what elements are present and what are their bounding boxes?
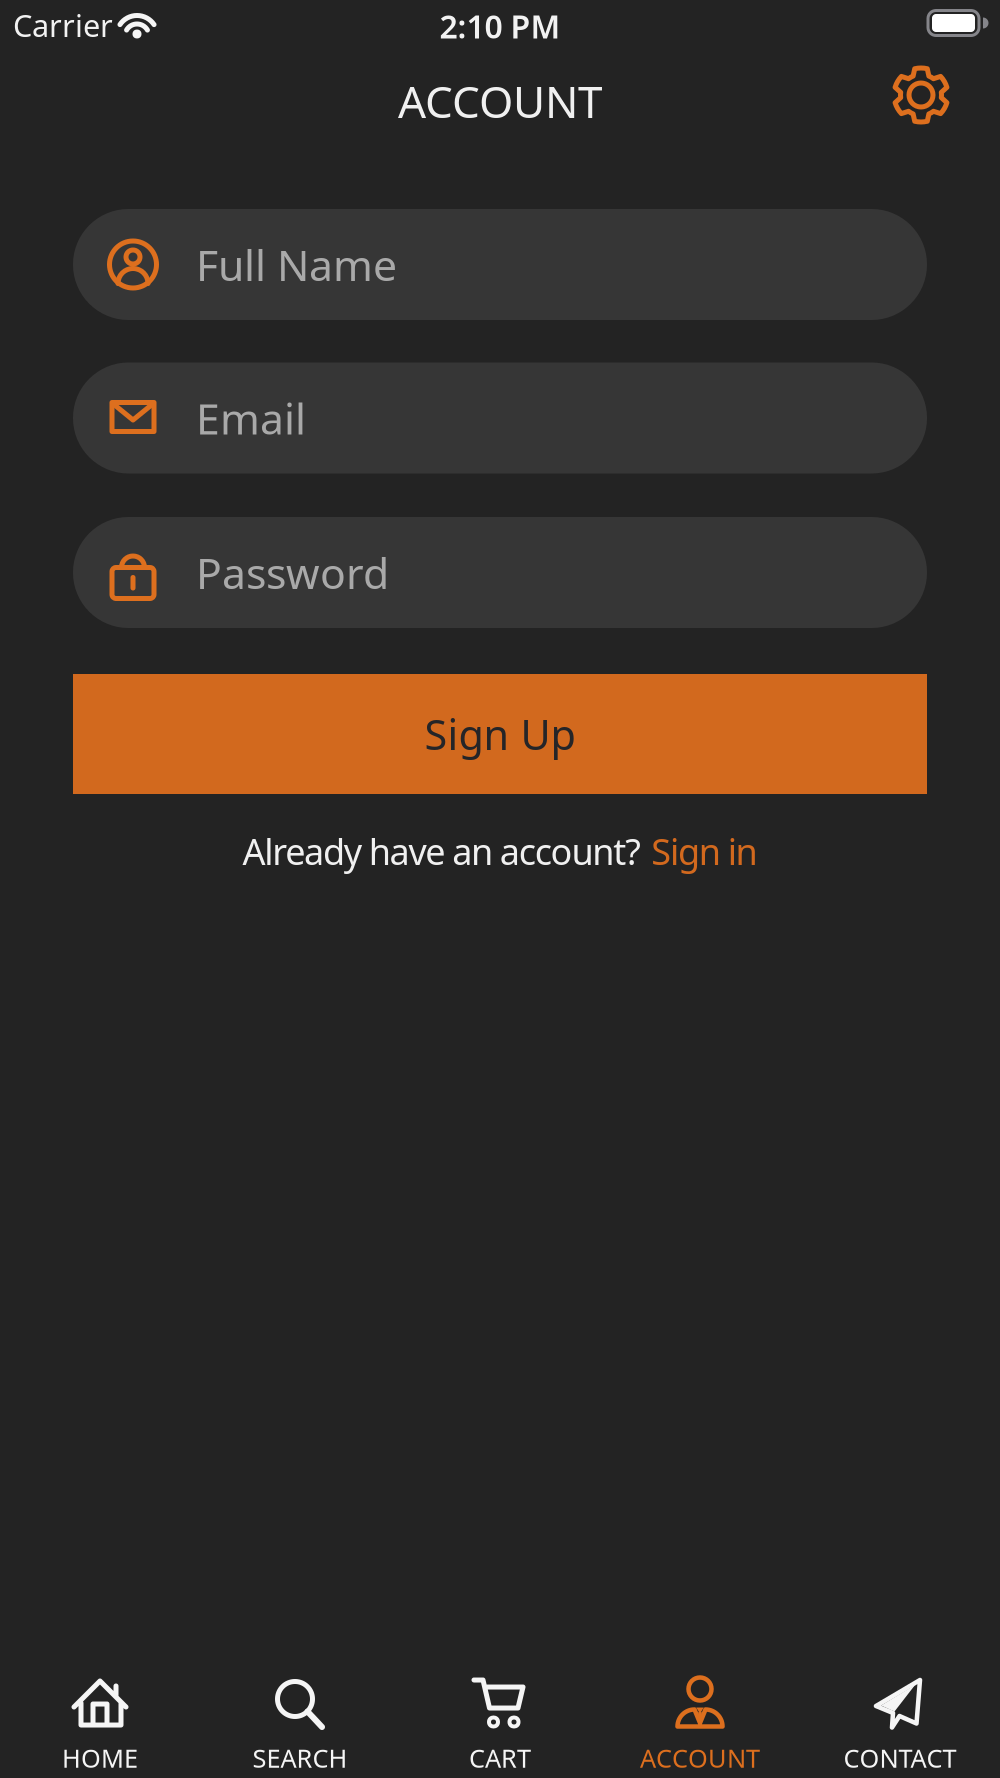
- staticText: Already have an account?: [242, 827, 641, 875]
- button[interactable]: Password: [73, 517, 927, 628]
- staticText: HOME: [62, 1741, 138, 1775]
- button[interactable]: Sign Up: [73, 674, 927, 794]
- staticText: Sign Up: [424, 707, 575, 761]
- staticText: Email: [196, 390, 306, 446]
- staticText: ACCOUNT: [398, 72, 602, 130]
- staticText: Sign in: [651, 827, 758, 875]
- button[interactable]: ACCOUNT: [600, 1651, 800, 1773]
- button[interactable]: HOME: [0, 1651, 200, 1773]
- staticText: CART: [469, 1741, 531, 1775]
- staticText: CONTACT: [843, 1741, 956, 1775]
- staticText: ACCOUNT: [640, 1741, 760, 1775]
- staticText: Password: [196, 544, 389, 601]
- button[interactable]: Settings: [891, 65, 951, 125]
- staticText: Carrier: [13, 5, 113, 45]
- button[interactable]: Full Name: [73, 209, 927, 320]
- button[interactable]: CONTACT: [800, 1651, 1000, 1773]
- button[interactable]: SEARCH: [200, 1651, 400, 1773]
- staticText: SEARCH: [252, 1741, 347, 1775]
- button[interactable]: Sign in: [651, 827, 758, 875]
- staticText: Full Name: [196, 236, 397, 293]
- button[interactable]: Email: [73, 362, 927, 473]
- button[interactable]: CART: [400, 1651, 600, 1773]
- staticText: 2:10 PM: [439, 5, 560, 47]
